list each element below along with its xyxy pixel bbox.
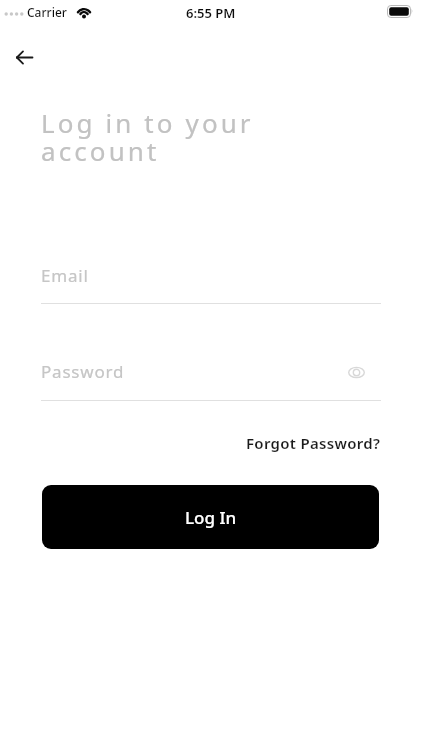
button[interactable]: Log In	[42, 485, 379, 549]
button[interactable]	[2, 40, 46, 74]
staticText: Password	[41, 360, 125, 383]
button[interactable]	[341, 358, 371, 386]
staticText: Log in to your account	[41, 105, 254, 169]
staticText: Carrier	[27, 4, 67, 20]
staticText: Log In	[185, 506, 237, 529]
staticText: 6:55 PM	[186, 4, 236, 22]
button[interactable]: Forgot Password?	[246, 433, 381, 453]
staticText: Email	[41, 264, 89, 287]
